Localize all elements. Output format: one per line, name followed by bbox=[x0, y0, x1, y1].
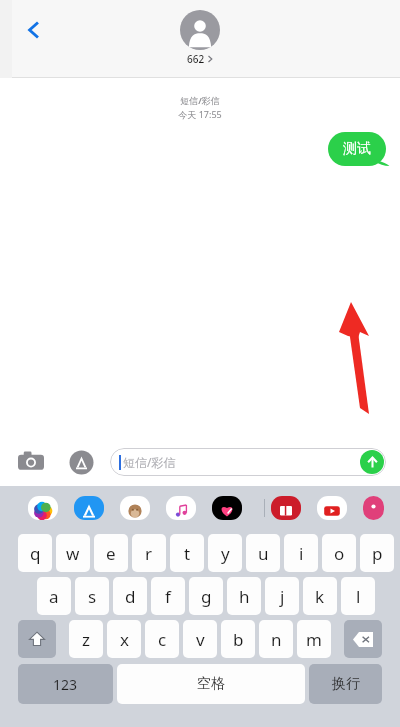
button[interactable]: Shift bbox=[18, 620, 56, 658]
button[interactable]: u bbox=[246, 534, 280, 572]
staticText: v bbox=[196, 628, 205, 651]
button[interactable]: Camera bbox=[14, 445, 48, 479]
button[interactable]: b bbox=[221, 620, 255, 658]
button[interactable]: m bbox=[297, 620, 331, 658]
staticText: 短信/彩信 bbox=[0, 94, 400, 106]
staticText: j bbox=[280, 585, 285, 608]
staticText: i bbox=[299, 542, 304, 565]
staticText: f bbox=[165, 585, 171, 608]
button[interactable]: d bbox=[113, 577, 147, 615]
button[interactable]: n bbox=[259, 620, 293, 658]
staticText: l bbox=[356, 585, 361, 608]
button[interactable]: App bbox=[120, 496, 150, 520]
staticText: z bbox=[82, 628, 90, 651]
button[interactable]: c bbox=[145, 620, 179, 658]
button[interactable]: s bbox=[75, 577, 109, 615]
button[interactable]: 短信/彩信 bbox=[110, 448, 386, 476]
staticText: h bbox=[239, 585, 250, 608]
button[interactable]: p bbox=[360, 534, 394, 572]
staticText: 今天 17:55 bbox=[0, 108, 400, 120]
staticText: 123 bbox=[53, 675, 78, 694]
staticText: s bbox=[88, 585, 97, 608]
button[interactable]: q bbox=[18, 534, 52, 572]
button[interactable]: 换行 bbox=[309, 664, 382, 704]
staticText: b bbox=[233, 628, 244, 651]
button[interactable]: w bbox=[56, 534, 90, 572]
staticText: q bbox=[30, 542, 41, 565]
button[interactable]: i bbox=[284, 534, 318, 572]
button[interactable]: App bbox=[28, 496, 58, 520]
button[interactable]: App bbox=[212, 496, 242, 520]
button[interactable]: j bbox=[265, 577, 299, 615]
button[interactable]: 空格 bbox=[117, 664, 305, 704]
button[interactable]: o bbox=[322, 534, 356, 572]
button[interactable]: App bbox=[74, 496, 104, 520]
button[interactable]: z bbox=[69, 620, 103, 658]
staticText: w bbox=[66, 542, 80, 565]
button[interactable]: e bbox=[94, 534, 128, 572]
staticText: p bbox=[372, 542, 383, 565]
staticText: 短信/彩信 bbox=[123, 454, 176, 470]
staticText: 空格 bbox=[197, 675, 225, 693]
button[interactable]: v bbox=[183, 620, 217, 658]
button[interactable]: x bbox=[107, 620, 141, 658]
button[interactable]: l bbox=[341, 577, 375, 615]
button[interactable]: App bbox=[166, 496, 196, 520]
button[interactable]: h bbox=[227, 577, 261, 615]
staticText: a bbox=[49, 585, 59, 608]
staticText: u bbox=[258, 542, 269, 565]
staticText: 换行 bbox=[332, 675, 360, 693]
button[interactable]: f bbox=[151, 577, 185, 615]
button[interactable]: 662 bbox=[180, 10, 220, 66]
button[interactable]: Back bbox=[14, 10, 54, 50]
button[interactable]: k bbox=[303, 577, 337, 615]
button[interactable]: a bbox=[37, 577, 71, 615]
button[interactable]: App Store bbox=[64, 445, 98, 479]
button[interactable]: App bbox=[317, 496, 347, 520]
staticText: r bbox=[145, 542, 153, 565]
staticText: e bbox=[106, 542, 116, 565]
staticText: y bbox=[221, 542, 230, 565]
staticText: n bbox=[271, 628, 282, 651]
staticText: t bbox=[184, 542, 191, 565]
button[interactable]: App bbox=[363, 496, 384, 520]
button[interactable]: 123 bbox=[18, 664, 113, 704]
staticText: g bbox=[201, 585, 212, 608]
staticText: m bbox=[306, 628, 322, 651]
staticText: x bbox=[120, 628, 129, 651]
staticText: c bbox=[158, 628, 167, 651]
button[interactable]: Send bbox=[360, 450, 384, 474]
staticText: o bbox=[334, 542, 345, 565]
button[interactable]: g bbox=[189, 577, 223, 615]
staticText: 662 bbox=[187, 52, 205, 66]
button[interactable]: Delete bbox=[344, 620, 382, 658]
staticText: 测试 bbox=[343, 140, 371, 158]
button[interactable]: y bbox=[208, 534, 242, 572]
staticText: k bbox=[315, 585, 325, 608]
button[interactable]: r bbox=[132, 534, 166, 572]
staticText: d bbox=[125, 585, 136, 608]
button[interactable]: App bbox=[271, 496, 301, 520]
button[interactable]: t bbox=[170, 534, 204, 572]
